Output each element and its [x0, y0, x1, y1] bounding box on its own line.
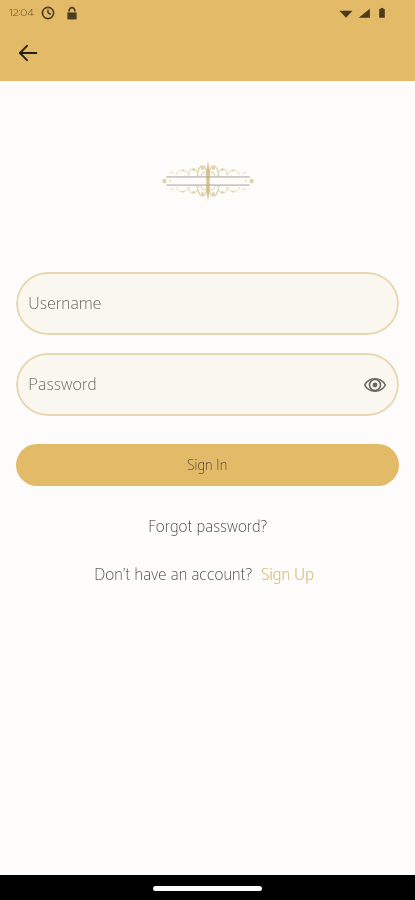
staticText: 12:04 — [9, 2, 34, 23]
staticText: Sign In — [187, 453, 228, 478]
button[interactable]: Username — [16, 272, 399, 335]
button[interactable]: Show password — [358, 368, 392, 402]
button[interactable]: Back — [6, 31, 50, 75]
staticText: Don't have an account? — [94, 561, 253, 589]
staticText: Password — [28, 370, 97, 400]
button[interactable]: Forgot password? — [138, 510, 278, 544]
staticText: Username — [28, 289, 102, 319]
staticText: Forgot password? — [148, 513, 268, 541]
button[interactable]: Sign Up — [253, 558, 322, 592]
staticText: Sign Up — [261, 561, 314, 589]
button[interactable]: Sign In — [16, 444, 399, 486]
button[interactable]: Password — [16, 353, 399, 416]
